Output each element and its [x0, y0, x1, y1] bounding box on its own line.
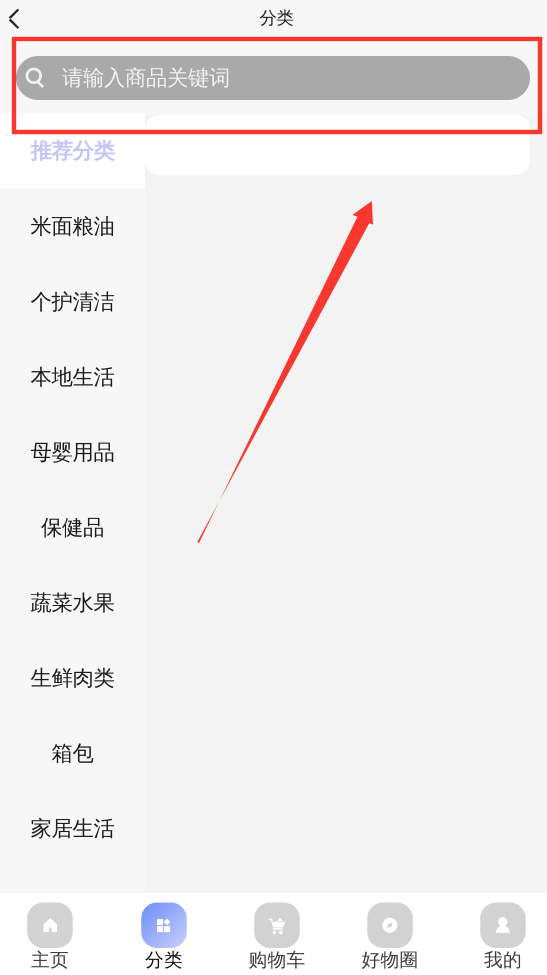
- button[interactable]: 保健品: [0, 490, 145, 565]
- staticText: 分类: [145, 948, 183, 971]
- button[interactable]: 主页: [0, 893, 102, 975]
- staticText: 母婴用品: [30, 439, 114, 465]
- button[interactable]: 蔬菜水果: [0, 565, 145, 641]
- staticText: 箱包: [51, 740, 93, 767]
- staticText: 保健品: [41, 514, 104, 541]
- button[interactable]: 生鲜肉类: [0, 641, 145, 716]
- staticText: 个护清洁: [30, 289, 114, 315]
- staticText: 分类: [259, 7, 293, 29]
- staticText: 米面粮油: [30, 213, 114, 240]
- button[interactable]: 米面粮油: [0, 189, 145, 264]
- staticText: 主页: [31, 948, 69, 971]
- button[interactable]: Back: [0, 0, 33, 38]
- staticText: 家居生活: [30, 816, 114, 842]
- staticText: 推荐分类: [30, 138, 114, 164]
- staticText: 好物圈: [361, 948, 418, 971]
- button[interactable]: 家居生活: [0, 791, 145, 866]
- staticText: 请输入商品关键词: [62, 65, 230, 91]
- button[interactable]: 请输入商品关键词: [16, 56, 530, 100]
- button[interactable]: 箱包: [0, 716, 145, 791]
- button[interactable]: 母婴用品: [0, 415, 145, 490]
- button[interactable]: 分类: [112, 893, 216, 975]
- staticText: 蔬菜水果: [30, 590, 114, 616]
- button[interactable]: 本地生活: [0, 339, 145, 415]
- button[interactable]: 个护清洁: [0, 264, 145, 339]
- button[interactable]: 好物圈: [338, 893, 442, 975]
- button[interactable]: 我的: [451, 893, 547, 975]
- button[interactable]: 购物车: [225, 893, 329, 975]
- button[interactable]: 推荐分类: [0, 114, 145, 189]
- staticText: 本地生活: [30, 364, 114, 390]
- staticText: 我的: [484, 948, 522, 971]
- staticText: 生鲜肉类: [30, 665, 114, 691]
- staticText: 购物车: [248, 948, 305, 971]
